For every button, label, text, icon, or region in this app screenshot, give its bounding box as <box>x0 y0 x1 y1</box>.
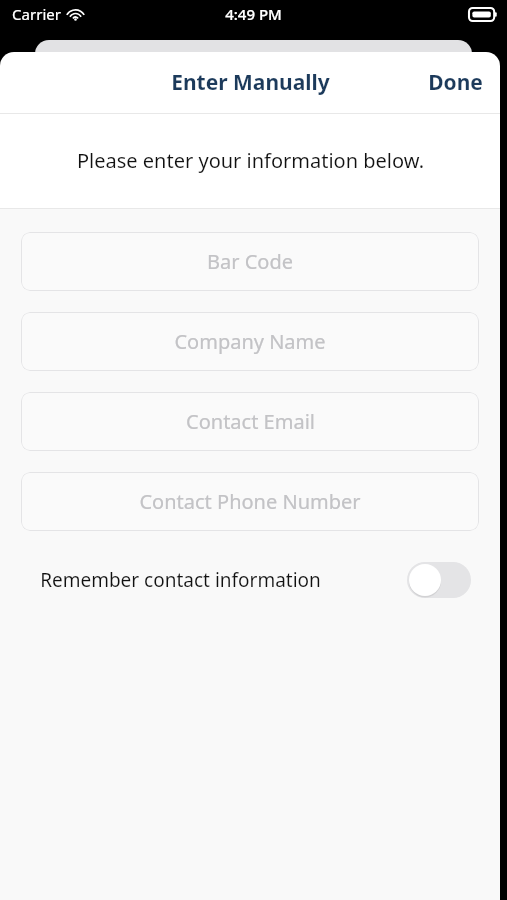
other: Battery full <box>469 8 497 21</box>
button[interactable]: Done <box>417 60 494 105</box>
staticText: Bar Code <box>207 248 293 275</box>
button[interactable]: Bar Code <box>21 232 479 291</box>
staticText: 4:49 PM <box>225 4 282 24</box>
staticText: Contact Email <box>186 408 315 435</box>
button[interactable]: Remember contact information <box>0 553 500 607</box>
staticText: Please enter your information below. <box>77 147 424 174</box>
button[interactable]: Company Name <box>21 312 479 371</box>
staticText: Enter Manually <box>171 68 330 97</box>
button[interactable]: Remember contact information toggle, off <box>407 562 471 598</box>
staticText: Contact Phone Number <box>139 488 361 515</box>
button[interactable]: Contact Email <box>21 392 479 451</box>
button[interactable]: Enter Manually <box>159 62 342 103</box>
staticText: Remember contact information <box>40 567 321 593</box>
staticText: Carrier <box>12 4 61 24</box>
staticText: Company Name <box>174 328 326 355</box>
button[interactable]: Contact Phone Number <box>21 472 479 531</box>
other: Wi-Fi signal <box>67 8 84 21</box>
staticText: Done <box>428 68 483 97</box>
